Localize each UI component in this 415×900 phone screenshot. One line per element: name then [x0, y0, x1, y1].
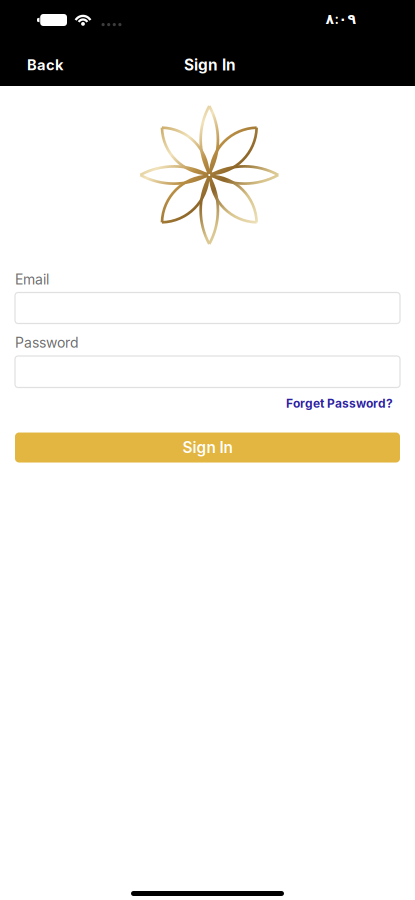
- button[interactable]: Back: [15, 44, 76, 86]
- button[interactable]: Sign In: [15, 432, 400, 462]
- staticText: Forget Password?: [286, 396, 393, 411]
- staticText: ۸:۰۹: [325, 10, 356, 27]
- staticText: Password: [15, 334, 79, 351]
- staticText: Sign In: [184, 56, 236, 74]
- staticText: Back: [27, 56, 64, 74]
- staticText: Sign In: [182, 438, 232, 457]
- button[interactable]: Forget Password?: [286, 396, 400, 407]
- staticText: Email: [15, 271, 49, 288]
